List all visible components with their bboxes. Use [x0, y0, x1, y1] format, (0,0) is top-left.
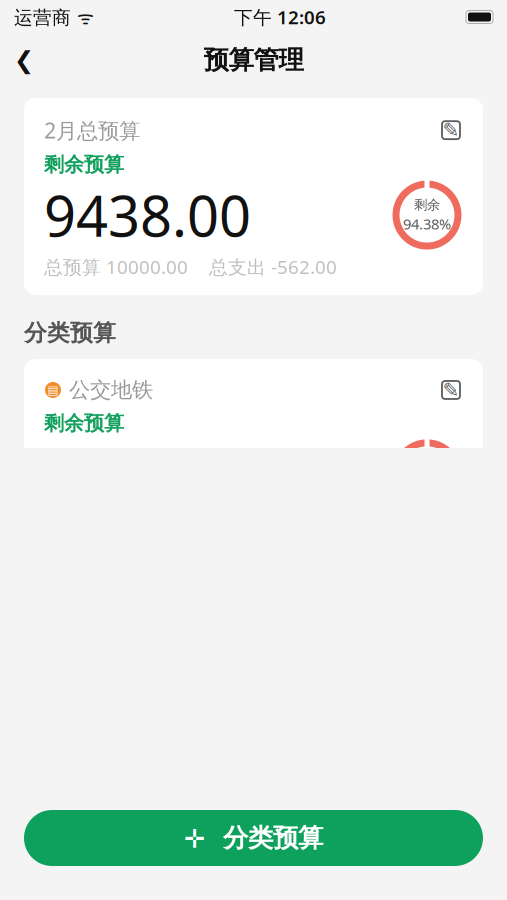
- staticText: 总预算 10000.00: [44, 254, 188, 279]
- staticText: 388.00: [44, 437, 219, 511]
- staticText: 公交地铁: [69, 377, 153, 403]
- staticText: ❮: [14, 46, 34, 74]
- staticText: 9438.00: [44, 178, 251, 252]
- button[interactable]: 返回: [0, 38, 48, 82]
- staticText: 下午 12:06: [234, 5, 326, 29]
- staticText: 分类预算: [24, 319, 116, 347]
- staticText: ✛ 分类预算: [184, 822, 323, 853]
- staticText: 剩余预算: [44, 411, 124, 436]
- staticText: 剩余预算: [44, 152, 124, 177]
- staticText: 94.38%: [403, 214, 451, 233]
- staticText: ▤: [47, 383, 58, 397]
- staticText: 运营商 ᯤ: [14, 5, 94, 29]
- button[interactable]: 2月总预算: [24, 98, 483, 295]
- button[interactable]: ✛ 分类预算: [24, 810, 483, 866]
- staticText: 预算管理: [203, 44, 303, 75]
- staticText: ✎: [442, 119, 459, 141]
- staticText: ✎: [442, 379, 459, 401]
- staticText: 2月总预算: [44, 116, 140, 144]
- staticText: 剩余: [414, 197, 440, 213]
- button[interactable]: ▤: [24, 359, 483, 554]
- staticText: 总支出 -562.00: [209, 254, 337, 279]
